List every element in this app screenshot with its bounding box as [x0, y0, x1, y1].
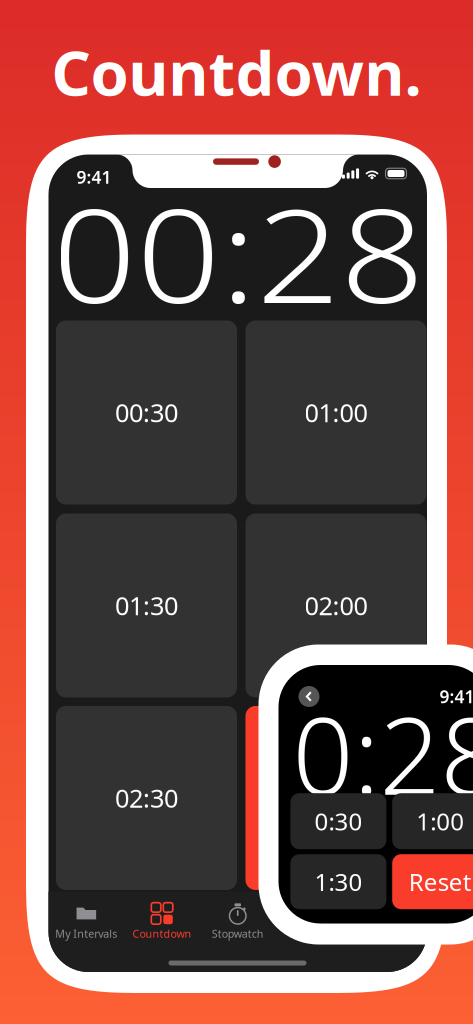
staticText: Countdown.	[51, 31, 421, 113]
staticText: Countdown	[133, 926, 192, 941]
button[interactable]: 01:00	[245, 320, 426, 504]
staticText: Reset	[409, 866, 472, 898]
staticText: 0:28	[292, 682, 473, 824]
button[interactable]: 02:00	[245, 513, 426, 697]
button[interactable]: 01:30	[56, 513, 237, 697]
button[interactable]: Back	[298, 686, 319, 707]
button[interactable]: My Intervals	[48, 897, 124, 945]
button[interactable]: Countdown	[124, 897, 200, 945]
staticText: 00:28	[52, 166, 424, 361]
button[interactable]: 1:30	[290, 854, 386, 909]
staticText: 9:41	[76, 165, 111, 188]
staticText: 01:30	[115, 589, 178, 622]
staticText: 1:30	[314, 866, 362, 898]
staticText: 02:30	[115, 781, 178, 815]
staticText: Stopwatch	[212, 926, 264, 941]
button[interactable]: Stopwatch	[200, 897, 276, 945]
staticText: My Intervals	[55, 926, 117, 941]
staticText: 1:00	[416, 805, 464, 837]
button[interactable]: 1:00	[392, 793, 473, 849]
staticText: 01:00	[304, 396, 367, 429]
staticText: 9:41	[439, 685, 473, 708]
button[interactable]: Stop	[245, 706, 426, 890]
button[interactable]: 00:30	[56, 320, 237, 504]
staticText: 00:30	[115, 396, 178, 429]
button[interactable]: 02:30	[56, 706, 237, 890]
staticText: 02:00	[304, 589, 367, 622]
button[interactable]: Reset	[392, 854, 473, 909]
button[interactable]: 0:30	[290, 793, 386, 849]
staticText: 0:30	[314, 805, 362, 837]
